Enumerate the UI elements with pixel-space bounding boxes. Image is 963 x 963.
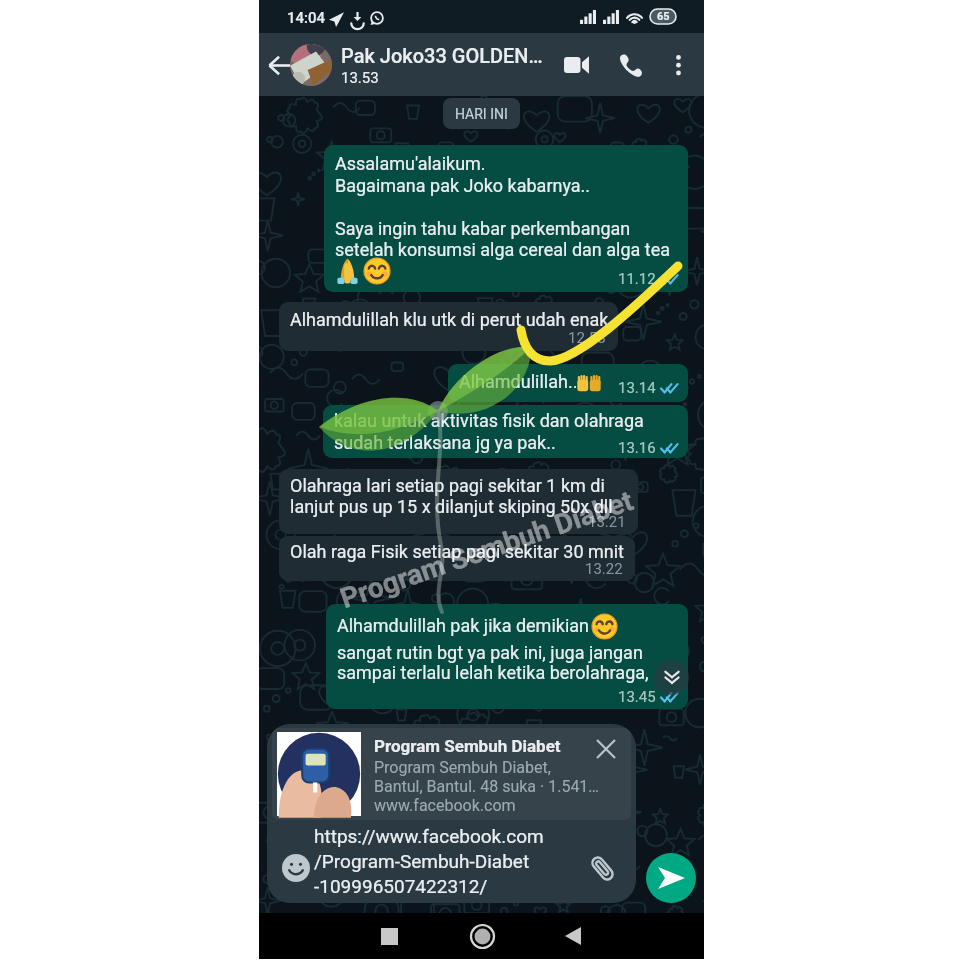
staticText: Olah raga Fisik setiap pagi sekitar 30 m… — [290, 541, 624, 562]
staticText: Assalamu'alaikum. — [335, 153, 486, 174]
button[interactable]: Profile photo — [290, 44, 332, 86]
staticText: /Program-Sembuh-Diabet — [314, 850, 530, 872]
button[interactable]: Attach — [580, 846, 624, 890]
staticText: kalau untuk aktivitas fisik dan olahraga — [334, 410, 644, 431]
button[interactable]: kalau untuk aktivitas fisik dan olahraga — [323, 405, 688, 458]
staticText: 13.21 — [588, 513, 626, 531]
staticText: Saya ingin tahu kabar perkembangan — [335, 218, 631, 239]
staticText: setelah konsumsi alga cereal dan alga te… — [335, 239, 670, 260]
staticText: Alhamdulillah pak jika demikian — [337, 615, 589, 636]
button[interactable]: Voice call — [610, 45, 650, 85]
staticText: 65 — [657, 10, 670, 23]
button[interactable]: Remove preview — [589, 732, 623, 766]
button[interactable]: Alhamdulillah klu utk di perut udah enak — [279, 302, 618, 351]
button[interactable]: Back — [262, 42, 296, 88]
staticText: sudah terlaksana jg ya pak.. — [334, 432, 556, 453]
staticText: 11.12 — [618, 270, 656, 288]
staticText: 12.58 — [568, 329, 606, 347]
button[interactable]: Olah raga Fisik setiap pagi sekitar 30 m… — [279, 536, 635, 581]
button[interactable]: Send — [646, 853, 696, 903]
button[interactable]: Home — [458, 913, 506, 959]
button[interactable]: Scroll to bottom — [654, 660, 689, 695]
staticText: Alhamdulillah klu utk di perut udah enak — [290, 309, 609, 330]
staticText: Program Sembuh Diabet — [374, 736, 561, 756]
staticText: Bantul, Bantul. 48 suka · 1.541… — [374, 777, 600, 796]
staticText: HARI INI — [455, 106, 508, 122]
staticText: 13.45 — [618, 688, 656, 706]
button[interactable]: Back — [549, 913, 597, 959]
button[interactable]: HARI INI — [443, 98, 520, 129]
staticText: Bagaimana pak Joko kabarnya.. — [335, 175, 591, 196]
button[interactable]: Olahraga lari setiap pagi sekitar 1 km d… — [279, 469, 638, 534]
button[interactable]: Video call — [556, 45, 596, 85]
staticText: sangat rutin bgt ya pak ini, juga jangan — [337, 642, 643, 663]
staticText: lanjut pus up 15 x dilanjut skiping 50x … — [290, 496, 613, 517]
button[interactable]: Alhamdulillah pak jika demikian — [326, 604, 688, 709]
staticText: www.facebook.com — [374, 796, 516, 815]
staticText: Program Sembuh Diabet, — [374, 758, 551, 777]
staticText: Pak Joko33 GOLDEN… — [341, 44, 543, 67]
staticText: sampai terlalu lelah ketika berolahraga, — [337, 662, 649, 683]
button[interactable]: Assalamu'alaikum. — [324, 145, 688, 292]
button[interactable]: Program Sembuh Diabet — [272, 728, 631, 820]
staticText: Olahraga lari setiap pagi sekitar 1 km d… — [290, 475, 605, 496]
button[interactable]: More options — [660, 46, 696, 84]
staticText: 13.16 — [618, 439, 656, 457]
staticText: -109996507422312/ — [314, 875, 488, 897]
button[interactable]: Recent apps — [365, 913, 413, 959]
staticText: Program Sembuh Diabet — [336, 484, 638, 615]
staticText: 13.53 — [341, 69, 379, 87]
button[interactable]: Emoji — [274, 846, 318, 890]
button[interactable]: Pak Joko33 GOLDEN… — [341, 44, 561, 86]
staticText: Alhamdulillah.. — [459, 371, 578, 392]
staticText: 13.14 — [618, 379, 656, 397]
button[interactable]: Alhamdulillah.. — [448, 364, 688, 402]
staticText: 14:04 — [287, 9, 326, 27]
staticText: https://www.facebook.com — [314, 825, 544, 847]
staticText: 13.22 — [585, 560, 623, 578]
